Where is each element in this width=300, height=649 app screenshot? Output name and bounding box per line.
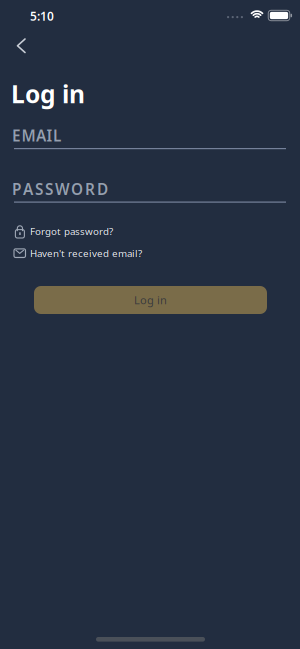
- staticText: PASSWORD: [12, 178, 108, 199]
- button[interactable]: [7, 31, 35, 60]
- button[interactable]: EMAIL: [14, 127, 286, 151]
- staticText: Forgot password?: [30, 225, 113, 238]
- button[interactable]: Log in: [34, 286, 267, 314]
- button[interactable]: PASSWORD: [14, 180, 286, 204]
- staticText: EMAIL: [12, 125, 61, 146]
- staticText: Log in: [134, 292, 167, 308]
- staticText: Log in: [11, 77, 85, 110]
- staticText: 5:10: [30, 8, 54, 24]
- button[interactable]: Haven't received email?: [14, 246, 142, 260]
- staticText: Haven't received email?: [30, 246, 142, 260]
- button[interactable]: Forgot password?: [14, 224, 113, 238]
